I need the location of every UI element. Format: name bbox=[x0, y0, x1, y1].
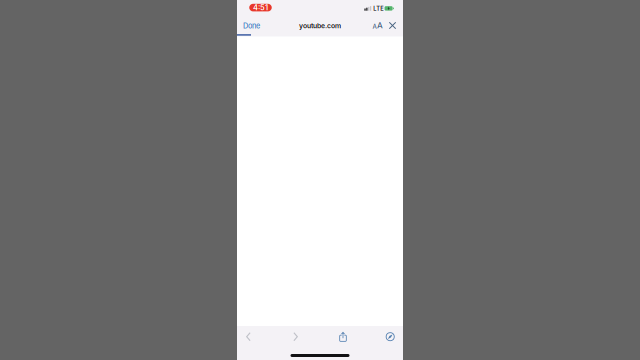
button[interactable]: Done bbox=[243, 16, 269, 35]
button[interactable]: Close bbox=[383, 16, 401, 35]
staticText: youtube.com bbox=[299, 22, 341, 30]
button[interactable]: Share bbox=[330, 325, 356, 349]
staticText: A bbox=[372, 23, 376, 30]
staticText: 4:51 bbox=[253, 3, 268, 12]
button[interactable]: Forward bbox=[283, 325, 309, 349]
button[interactable]: Page settings bbox=[369, 16, 387, 35]
button[interactable]: Back bbox=[235, 325, 261, 349]
staticText: A bbox=[377, 20, 383, 30]
staticText: Done bbox=[243, 21, 260, 30]
staticText: LTE bbox=[373, 5, 383, 12]
button[interactable]: Open in Safari bbox=[377, 325, 403, 349]
